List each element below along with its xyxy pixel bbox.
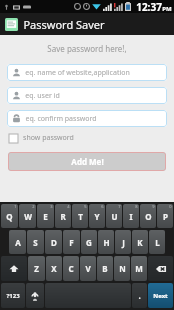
staticText: 4 (67, 204, 70, 209)
staticText: 9 (152, 204, 155, 209)
staticText: 8 (135, 204, 138, 209)
staticText: O (145, 211, 152, 222)
staticText: M (135, 263, 143, 274)
button[interactable]: 6 (89, 204, 105, 228)
staticText: eq. name of website,application (25, 68, 130, 78)
staticText: C (68, 263, 74, 274)
staticText: T (78, 211, 83, 222)
staticText: eq. user id (25, 91, 60, 101)
staticText: D (51, 237, 57, 248)
staticText: eq. confirm password (25, 114, 97, 124)
staticText: E (43, 211, 48, 222)
button[interactable]: K (132, 230, 148, 254)
button[interactable]: N (114, 256, 130, 281)
button[interactable]: Z (28, 256, 45, 281)
staticText: H (103, 237, 110, 248)
button[interactable]: eq. confirm password (7, 110, 167, 127)
staticText: . (138, 290, 141, 301)
button[interactable]: 5 (72, 204, 88, 228)
staticText: G (86, 237, 92, 248)
button[interactable]: 4 (55, 204, 71, 228)
button[interactable]: 1 (1, 204, 18, 228)
staticText: U (111, 211, 118, 222)
button[interactable]: 9 (140, 204, 156, 228)
button[interactable]: G (81, 230, 97, 254)
staticText: F (69, 237, 74, 248)
staticText: S (33, 237, 38, 248)
staticText: Q (6, 211, 13, 222)
button[interactable]: 3 (37, 204, 54, 228)
button[interactable]: ?123 (1, 283, 25, 308)
button[interactable]: H (98, 230, 114, 254)
button[interactable]: X (46, 256, 62, 281)
button[interactable]: Add Me! (8, 152, 166, 171)
button[interactable]: M (131, 256, 147, 281)
staticText: Y (94, 211, 100, 222)
button[interactable]: D (45, 230, 62, 254)
button[interactable]: A (9, 230, 26, 254)
button[interactable]: 7 (106, 204, 122, 228)
staticText: J (122, 237, 125, 248)
staticText: Save password here!, (47, 43, 127, 54)
staticText: Z (34, 263, 39, 274)
staticText: show password (23, 133, 74, 143)
staticText: 7 (118, 204, 121, 209)
button[interactable] (45, 283, 131, 308)
button[interactable]: J (115, 230, 131, 254)
staticText: Password Saver (23, 17, 105, 32)
button[interactable]: 0 (157, 204, 173, 228)
staticText: 1 (14, 204, 17, 209)
staticText: P (163, 211, 168, 222)
staticText: 3 (50, 204, 53, 209)
staticText: V (85, 263, 91, 274)
button[interactable]: 2 (19, 204, 36, 228)
staticText: X (51, 263, 57, 274)
staticText: 5 (84, 204, 87, 209)
staticText: PM (162, 5, 172, 13)
button[interactable]: Next (148, 283, 173, 308)
button[interactable]: S (27, 230, 44, 254)
staticText: ?123 (6, 292, 20, 300)
button[interactable]: . (132, 283, 147, 308)
button[interactable]: B (97, 256, 113, 281)
staticText: Next (153, 292, 168, 300)
staticText: A (15, 237, 21, 248)
button[interactable]: Voice input (26, 283, 44, 308)
staticText: K (137, 237, 143, 248)
staticText: 6 (101, 204, 104, 209)
staticText: 0 (169, 204, 172, 209)
button[interactable]: Backspace (148, 256, 173, 281)
staticText: R (60, 211, 66, 222)
button[interactable]: eq. name of website,application (7, 64, 167, 81)
button[interactable]: show password (9, 133, 174, 143)
staticText: 12:37 (136, 0, 162, 13)
button[interactable]: eq. user id (7, 87, 167, 104)
button[interactable]: C (63, 256, 79, 281)
staticText: W (24, 211, 32, 222)
staticText: B (102, 263, 108, 274)
staticText: I (129, 211, 133, 222)
staticText: 2 (32, 204, 35, 209)
staticText: Add Me! (71, 156, 104, 167)
button[interactable]: F (63, 230, 80, 254)
button[interactable]: V (80, 256, 96, 281)
button[interactable]: L (149, 230, 165, 254)
staticText: N (119, 263, 126, 274)
button[interactable]: 8 (123, 204, 139, 228)
staticText: L (155, 237, 160, 248)
button[interactable]: Shift (1, 256, 27, 281)
